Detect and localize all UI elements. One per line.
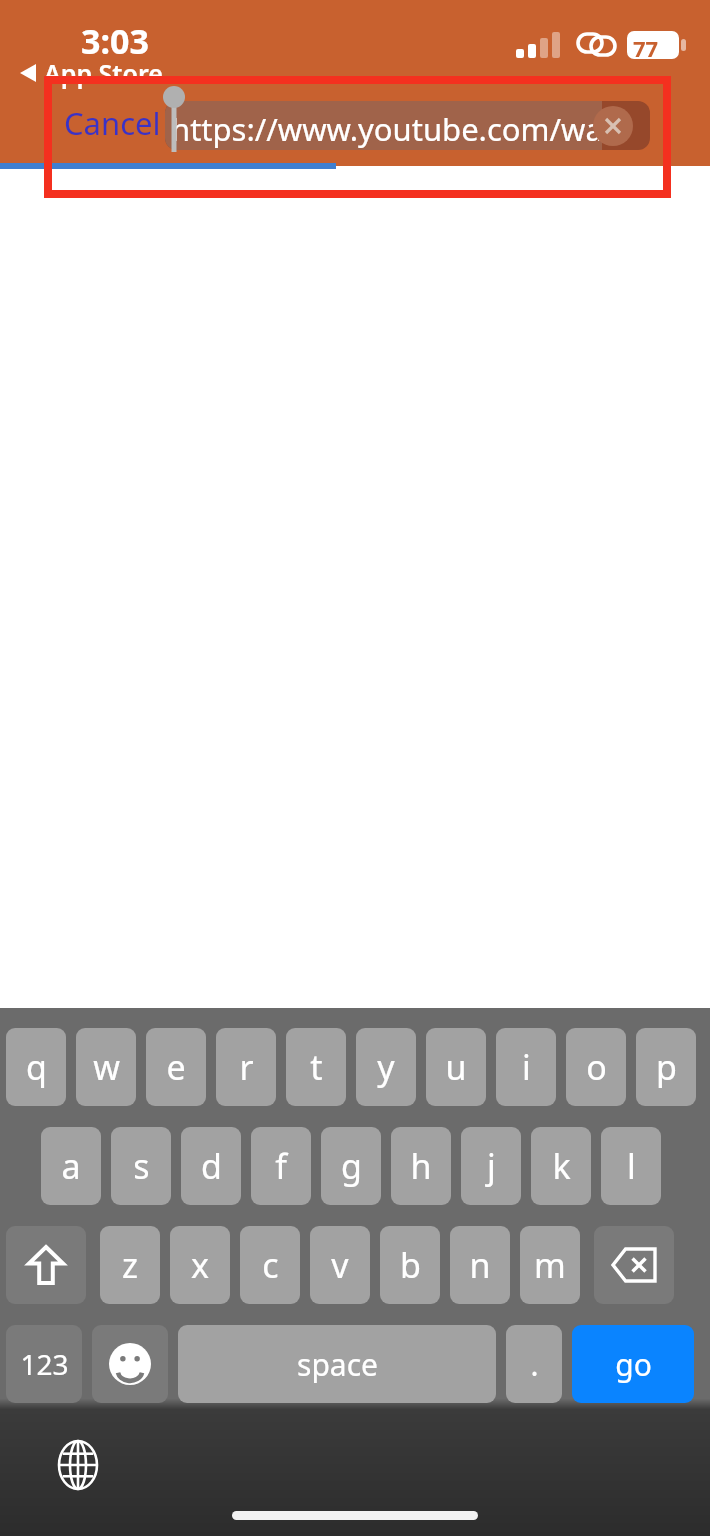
staticText: o bbox=[586, 1044, 607, 1090]
button[interactable]: t bbox=[286, 1028, 346, 1106]
staticText: b bbox=[400, 1242, 421, 1288]
button[interactable]: https://www.youtube.com/wat bbox=[165, 101, 650, 150]
staticText: l bbox=[627, 1143, 636, 1189]
button[interactable]: i bbox=[496, 1028, 556, 1106]
staticText: . bbox=[530, 1344, 539, 1385]
staticText: s bbox=[133, 1143, 150, 1189]
button[interactable]: j bbox=[461, 1127, 521, 1205]
button[interactable]: n bbox=[450, 1226, 510, 1304]
staticText: a bbox=[61, 1143, 81, 1189]
button[interactable]: key bbox=[6, 1226, 86, 1304]
button[interactable]: k bbox=[531, 1127, 591, 1205]
button[interactable]: b bbox=[380, 1226, 440, 1304]
button[interactable]: key bbox=[92, 1325, 168, 1403]
button[interactable]: Clear text bbox=[593, 106, 633, 146]
staticText: v bbox=[331, 1242, 349, 1288]
button[interactable]: key bbox=[594, 1226, 674, 1304]
staticText: z bbox=[122, 1242, 138, 1288]
staticText: u bbox=[445, 1044, 467, 1090]
button[interactable]: go bbox=[572, 1325, 694, 1403]
button[interactable]: s bbox=[111, 1127, 171, 1205]
button[interactable]: o bbox=[566, 1028, 626, 1106]
staticText: App Store bbox=[44, 56, 163, 90]
staticText: Cancel bbox=[64, 102, 161, 144]
button[interactable]: space bbox=[178, 1325, 496, 1403]
staticText: k bbox=[552, 1143, 571, 1189]
button[interactable]: f bbox=[251, 1127, 311, 1205]
staticText: h bbox=[410, 1143, 432, 1189]
staticText: x bbox=[191, 1242, 209, 1288]
button[interactable]: c bbox=[240, 1226, 300, 1304]
staticText: 123 bbox=[20, 1345, 69, 1383]
staticText: m bbox=[534, 1242, 566, 1288]
button[interactable]: x bbox=[170, 1226, 230, 1304]
button[interactable]: v bbox=[310, 1226, 370, 1304]
button[interactable]: l bbox=[601, 1127, 661, 1205]
staticText: r bbox=[239, 1044, 254, 1090]
button[interactable]: 123 bbox=[6, 1325, 82, 1403]
staticText: t bbox=[310, 1044, 323, 1090]
staticText: j bbox=[487, 1143, 496, 1189]
staticText: f bbox=[275, 1143, 287, 1189]
button[interactable]: w bbox=[76, 1028, 136, 1106]
staticText: q bbox=[26, 1044, 47, 1090]
button[interactable]: Change keyboard language bbox=[50, 1437, 106, 1493]
button[interactable]: Cancel bbox=[60, 100, 165, 146]
staticText: w bbox=[93, 1044, 120, 1090]
staticText: https://www.youtube.com/wat bbox=[171, 108, 615, 150]
button[interactable]: App Store bbox=[20, 56, 163, 90]
button[interactable]: d bbox=[181, 1127, 241, 1205]
button[interactable]: r bbox=[216, 1028, 276, 1106]
staticText: g bbox=[341, 1143, 362, 1189]
button[interactable]: y bbox=[356, 1028, 416, 1106]
button[interactable]: p bbox=[636, 1028, 696, 1106]
button[interactable]: u bbox=[426, 1028, 486, 1106]
staticText: y bbox=[377, 1044, 395, 1090]
staticText: i bbox=[522, 1044, 531, 1090]
staticText: 77 bbox=[633, 33, 659, 63]
button[interactable]: q bbox=[6, 1028, 66, 1106]
staticText: p bbox=[656, 1044, 677, 1090]
button[interactable]: z bbox=[100, 1226, 160, 1304]
button[interactable]: g bbox=[321, 1127, 381, 1205]
button[interactable]: h bbox=[391, 1127, 451, 1205]
staticText: n bbox=[469, 1242, 491, 1288]
staticText: 3:03 bbox=[81, 18, 149, 64]
staticText: c bbox=[262, 1242, 279, 1288]
button[interactable]: . bbox=[506, 1325, 562, 1403]
button[interactable]: m bbox=[520, 1226, 580, 1304]
staticText: space bbox=[297, 1344, 378, 1385]
button[interactable]: e bbox=[146, 1028, 206, 1106]
staticText: d bbox=[201, 1143, 222, 1189]
button[interactable]: a bbox=[41, 1127, 101, 1205]
staticText: go bbox=[615, 1344, 652, 1385]
staticText: e bbox=[166, 1044, 186, 1090]
